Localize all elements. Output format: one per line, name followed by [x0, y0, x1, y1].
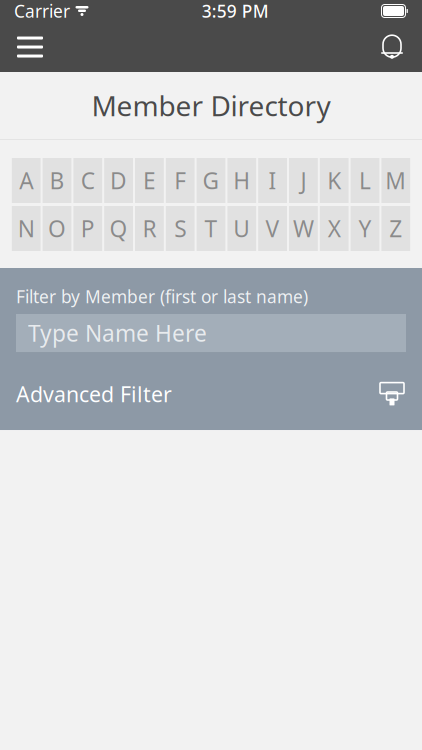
button[interactable]: U	[227, 206, 256, 251]
button[interactable]: T	[197, 206, 225, 251]
button[interactable]: Q	[104, 206, 133, 251]
button[interactable]: N	[12, 206, 41, 251]
staticText: E	[143, 165, 156, 195]
button[interactable]: F	[166, 158, 195, 203]
button[interactable]: P	[73, 206, 102, 251]
staticText: 3:59 PM	[202, 0, 269, 22]
staticText: O	[48, 213, 66, 243]
button[interactable]: S	[166, 206, 195, 251]
button[interactable]: I	[258, 158, 287, 203]
staticText: Type Name Here	[28, 318, 207, 348]
staticText: D	[110, 165, 127, 195]
staticText: W	[293, 213, 314, 243]
staticText: V	[266, 213, 280, 243]
staticText: Advanced Filter	[16, 380, 172, 408]
button[interactable]: R	[135, 206, 164, 251]
button[interactable]: Advanced Filter	[16, 374, 406, 414]
button[interactable]: Y	[351, 206, 379, 251]
button[interactable]: E	[135, 158, 164, 203]
button[interactable]: C	[73, 158, 102, 203]
button[interactable]: Type Name Here	[16, 314, 406, 352]
staticText: Member Directory	[91, 87, 330, 124]
staticText: G	[202, 165, 219, 195]
button[interactable]: V	[258, 206, 287, 251]
button[interactable]: A	[12, 158, 41, 203]
button[interactable]: Notifications	[370, 25, 414, 69]
staticText: Q	[110, 213, 128, 243]
staticText: I	[269, 165, 277, 195]
button[interactable]: Menu	[8, 25, 52, 69]
staticText: X	[328, 213, 341, 243]
staticText: R	[142, 213, 156, 243]
staticText: L	[359, 165, 371, 195]
button[interactable]: D	[104, 158, 133, 203]
button[interactable]: O	[43, 206, 71, 251]
staticText: K	[327, 165, 341, 195]
staticText: Z	[389, 213, 402, 243]
button[interactable]: H	[227, 158, 256, 203]
staticText: T	[204, 213, 217, 243]
button[interactable]: Z	[381, 206, 410, 251]
staticText: J	[300, 165, 306, 195]
staticText: Carrier	[14, 0, 70, 22]
staticText: H	[233, 165, 250, 195]
staticText: A	[19, 165, 33, 195]
button[interactable]: B	[43, 158, 71, 203]
staticText: N	[18, 213, 35, 243]
button[interactable]: J	[289, 158, 318, 203]
staticText: F	[174, 165, 186, 195]
staticText: Filter by Member (first or last name)	[16, 285, 308, 308]
staticText: B	[49, 165, 64, 195]
button[interactable]: G	[197, 158, 225, 203]
staticText: P	[81, 213, 95, 243]
button[interactable]: K	[320, 158, 349, 203]
button[interactable]: M	[381, 158, 410, 203]
staticText: Y	[358, 213, 371, 243]
staticText: M	[385, 165, 406, 195]
staticText: C	[81, 165, 95, 195]
staticText: S	[174, 213, 186, 243]
button[interactable]: X	[320, 206, 349, 251]
staticText: U	[233, 213, 250, 243]
button[interactable]: W	[289, 206, 318, 251]
button[interactable]: L	[351, 158, 379, 203]
